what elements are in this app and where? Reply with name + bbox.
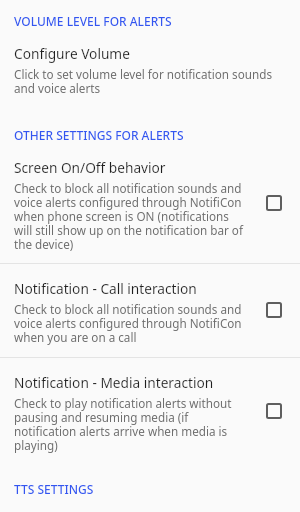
- staticText: Configure Volume: [14, 44, 130, 63]
- button[interactable]: Toggle setting: [248, 179, 300, 231]
- button[interactable]: Configure Volume: [0, 29, 300, 109]
- staticText: TTS SETTINGS: [14, 481, 94, 497]
- staticText: Check to block all notification sounds a…: [14, 180, 248, 252]
- staticText: OTHER SETTINGS FOR ALERTS: [14, 127, 184, 143]
- staticText: Click to set volume level for notificati…: [14, 66, 286, 96]
- button[interactable]: Notification - Media interaction: [0, 358, 300, 464]
- staticText: Notification - Media interaction: [14, 373, 214, 392]
- staticText: Check to block all notification sounds a…: [14, 301, 248, 345]
- staticText: Screen On/Off behavior: [14, 158, 166, 177]
- staticText: Notification - Call interaction: [14, 279, 197, 298]
- button[interactable]: Toggle setting: [248, 387, 300, 439]
- button[interactable]: Screen On/Off behavior: [0, 143, 300, 263]
- button[interactable]: Notification - Call interaction: [0, 264, 300, 357]
- staticText: VOLUME LEVEL FOR ALERTS: [14, 13, 172, 29]
- button[interactable]: Toggle setting: [248, 286, 300, 338]
- staticText: Check to play notification alerts withou…: [14, 395, 248, 453]
